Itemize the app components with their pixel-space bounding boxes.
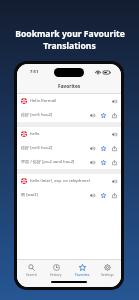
button[interactable]: Favorite	[99, 191, 107, 199]
button[interactable]: Favorite	[99, 158, 107, 166]
button[interactable]: 你好 [nei5 hou2]	[17, 141, 121, 155]
button[interactable]: 你好 [nei5 hou2]	[17, 108, 121, 122]
button[interactable]: Favorite	[99, 111, 107, 119]
staticText: 你好 [nei5 hou2]	[21, 112, 88, 118]
button[interactable]: hello	[17, 127, 121, 141]
button[interactable]: Share	[110, 144, 118, 152]
button[interactable]: Play pronunciation	[110, 97, 118, 105]
button[interactable]: Hello (formal)	[17, 94, 121, 108]
button[interactable]: History	[44, 264, 68, 277]
button[interactable]: Play pronunciation	[110, 177, 118, 185]
button[interactable]: Play pronunciation	[110, 130, 118, 138]
button[interactable]: hello (inter), esp. on telephone)	[17, 174, 121, 188]
button[interactable]: Favorites	[70, 264, 94, 277]
button[interactable]: Settings	[95, 264, 119, 277]
staticText: 你好 [nei5 hou2]	[21, 145, 88, 151]
staticText: History	[50, 272, 62, 277]
button[interactable]: Share	[110, 158, 118, 166]
staticText: 喂 [wai3]	[21, 192, 88, 198]
staticText: Favorites	[75, 272, 90, 277]
staticText: Bookmark your Favourite	[15, 28, 125, 40]
staticText: hello	[30, 131, 110, 137]
staticText: 早晨 / 你好 [jou2 san4 hou2]	[21, 159, 88, 165]
staticText: hello (inter), esp. on telephone)	[30, 178, 110, 184]
staticText: Translations	[43, 40, 96, 52]
button[interactable]: 早晨 / 你好 [jou2 san4 hou2]	[17, 155, 121, 169]
button[interactable]: Favorite	[99, 144, 107, 152]
button[interactable]: Search	[19, 264, 43, 277]
staticText: Search	[26, 272, 37, 277]
button[interactable]: Play pronunciation	[88, 191, 96, 199]
staticText: Settings	[101, 272, 114, 277]
staticText: 7:51	[30, 69, 39, 75]
button[interactable]: 喂 [wai3]	[17, 188, 121, 202]
button[interactable]: Play pronunciation	[88, 158, 96, 166]
staticText: Favorites	[58, 83, 81, 90]
button[interactable]: Play pronunciation	[88, 144, 96, 152]
staticText: Hello (formal)	[30, 98, 110, 104]
button[interactable]: Share	[110, 191, 118, 199]
button[interactable]: Share	[110, 111, 118, 119]
button[interactable]: Play pronunciation	[88, 111, 96, 119]
